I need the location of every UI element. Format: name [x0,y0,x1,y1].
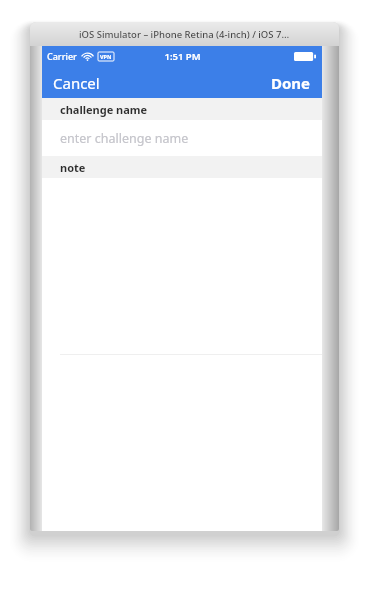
staticText: iOS Simulator – iPhone Retina (4-inch) /… [79,28,290,41]
staticText: Carrier [47,50,77,62]
staticText: note [60,160,86,175]
staticText: Done [271,73,311,91]
staticText: VPN [100,53,112,60]
staticText: challenge name [60,102,148,117]
staticText: Cancel [53,73,100,91]
staticText: enter challenge name [60,130,189,147]
staticText: 1:51 PM [164,50,201,63]
other: Wi-Fi signal [82,52,93,61]
other: Battery full [294,52,316,61]
button[interactable]: Cancel [42,66,112,98]
button[interactable]: Done [259,66,322,98]
button[interactable]: enter challenge name [42,120,322,156]
